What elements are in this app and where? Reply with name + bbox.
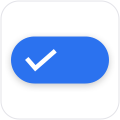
- button[interactable]: Confirm: [11, 36, 109, 83]
